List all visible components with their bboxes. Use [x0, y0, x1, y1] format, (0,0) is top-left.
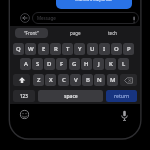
- button[interactable]: I: [99, 43, 110, 55]
- staticText: U: [90, 45, 95, 53]
- button[interactable]: Message: [32, 12, 139, 24]
- staticText: H: [84, 60, 89, 68]
- staticText: A: [24, 60, 28, 68]
- button[interactable]: [120, 74, 137, 86]
- button[interactable]: O: [111, 43, 122, 55]
- button[interactable]: [120, 110, 129, 123]
- button[interactable]: P: [123, 43, 134, 55]
- button[interactable]: Head (this is really bit box): [56, 0, 132, 9]
- staticText: “Front”: [24, 30, 39, 36]
- button[interactable]: L: [118, 58, 129, 70]
- button[interactable]: Y: [74, 43, 85, 55]
- staticText: Head (this is really bit box): [75, 0, 113, 2]
- staticText: Y: [78, 45, 82, 53]
- button[interactable]: F: [56, 58, 67, 70]
- button[interactable]: D: [44, 58, 55, 70]
- staticText: Q: [16, 45, 21, 53]
- button[interactable]: 123: [13, 90, 35, 102]
- staticText: J: [98, 60, 100, 68]
- staticText: M: [110, 76, 116, 84]
- button[interactable]: M: [107, 74, 118, 86]
- button[interactable]: B: [82, 74, 93, 86]
- button[interactable]: V: [70, 74, 81, 86]
- button[interactable]: J: [93, 58, 104, 70]
- staticText: Z: [37, 76, 41, 84]
- staticText: R: [54, 45, 58, 53]
- staticText: I: [103, 45, 106, 53]
- staticText: Message: [37, 15, 56, 21]
- staticText: B: [86, 76, 90, 84]
- button[interactable]: [20, 110, 29, 119]
- button[interactable]: return: [106, 90, 137, 102]
- staticText: X: [49, 76, 53, 84]
- button[interactable]: space: [38, 90, 103, 102]
- button[interactable]: N: [94, 74, 105, 86]
- button[interactable]: G: [69, 58, 80, 70]
- staticText: page: [70, 30, 81, 36]
- staticText: 123: [20, 93, 28, 99]
- button[interactable]: Q: [13, 43, 24, 55]
- button[interactable]: C: [58, 74, 69, 86]
- button[interactable]: R: [50, 43, 61, 55]
- button[interactable]: E: [38, 43, 49, 55]
- staticText: E: [42, 45, 46, 53]
- button[interactable]: page: [62, 28, 88, 38]
- staticText: N: [97, 76, 102, 84]
- button[interactable]: H: [81, 58, 92, 70]
- button[interactable]: K: [105, 58, 116, 70]
- button[interactable]: “Front”: [15, 28, 48, 38]
- button[interactable]: X: [45, 74, 56, 86]
- staticText: space: [64, 93, 78, 100]
- button[interactable]: [20, 13, 30, 23]
- staticText: P: [127, 45, 131, 53]
- button[interactable]: T: [62, 43, 73, 55]
- button[interactable]: [13, 74, 30, 86]
- button[interactable]: tech: [100, 28, 126, 38]
- staticText: F: [60, 60, 64, 68]
- button[interactable]: Z: [33, 74, 44, 86]
- button[interactable]: W: [25, 43, 36, 55]
- staticText: D: [47, 60, 52, 68]
- staticText: C: [62, 76, 66, 84]
- staticText: V: [74, 76, 78, 84]
- staticText: G: [72, 60, 77, 68]
- staticText: O: [114, 45, 119, 53]
- staticText: K: [109, 60, 113, 68]
- staticText: S: [36, 60, 40, 68]
- staticText: L: [122, 60, 126, 68]
- button[interactable]: U: [87, 43, 98, 55]
- staticText: return: [114, 93, 130, 100]
- button[interactable]: A: [20, 58, 31, 70]
- staticText: W: [28, 45, 34, 53]
- staticText: T: [66, 45, 70, 53]
- button[interactable]: S: [32, 58, 43, 70]
- staticText: tech: [108, 30, 118, 36]
